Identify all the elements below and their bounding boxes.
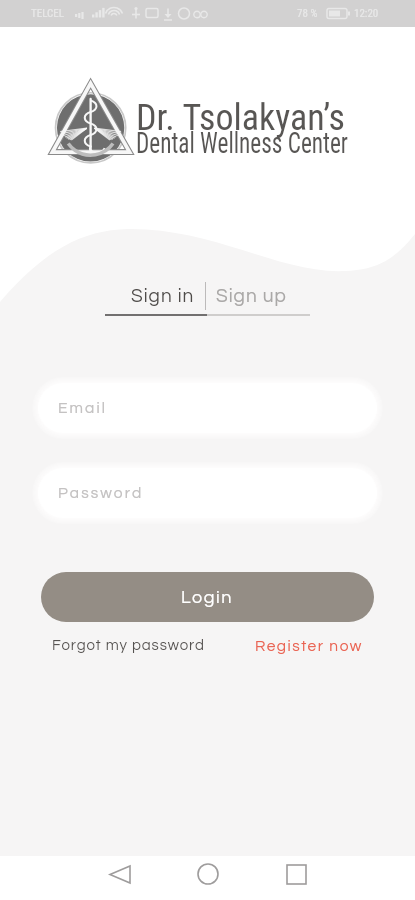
staticText: Email xyxy=(58,400,107,416)
staticText: Login xyxy=(181,588,234,607)
button[interactable]: Home xyxy=(186,852,230,896)
staticText: Register now xyxy=(255,638,363,654)
button[interactable]: Login xyxy=(41,572,374,622)
button[interactable]: Back xyxy=(98,852,142,896)
button[interactable]: Sign in xyxy=(114,281,205,311)
button[interactable]: Email xyxy=(38,400,377,416)
staticText: 78 % xyxy=(297,7,318,20)
staticText: Dr. Tsolakyan’s xyxy=(136,95,345,139)
button[interactable]: Register now xyxy=(255,634,363,658)
button[interactable]: Forgot my password xyxy=(52,634,205,657)
staticText: TELCEL xyxy=(31,7,65,20)
staticText: Dental Wellness Center xyxy=(136,125,348,160)
staticText: 12:20 xyxy=(354,7,379,20)
staticText: Sign in xyxy=(131,286,195,306)
staticText: Sign up xyxy=(216,286,287,306)
staticText: Forgot my password xyxy=(52,638,205,653)
button[interactable]: Recent apps xyxy=(274,852,318,896)
button[interactable]: Sign up xyxy=(206,281,301,311)
staticText: Password xyxy=(58,485,144,501)
button[interactable]: Password xyxy=(38,485,377,501)
